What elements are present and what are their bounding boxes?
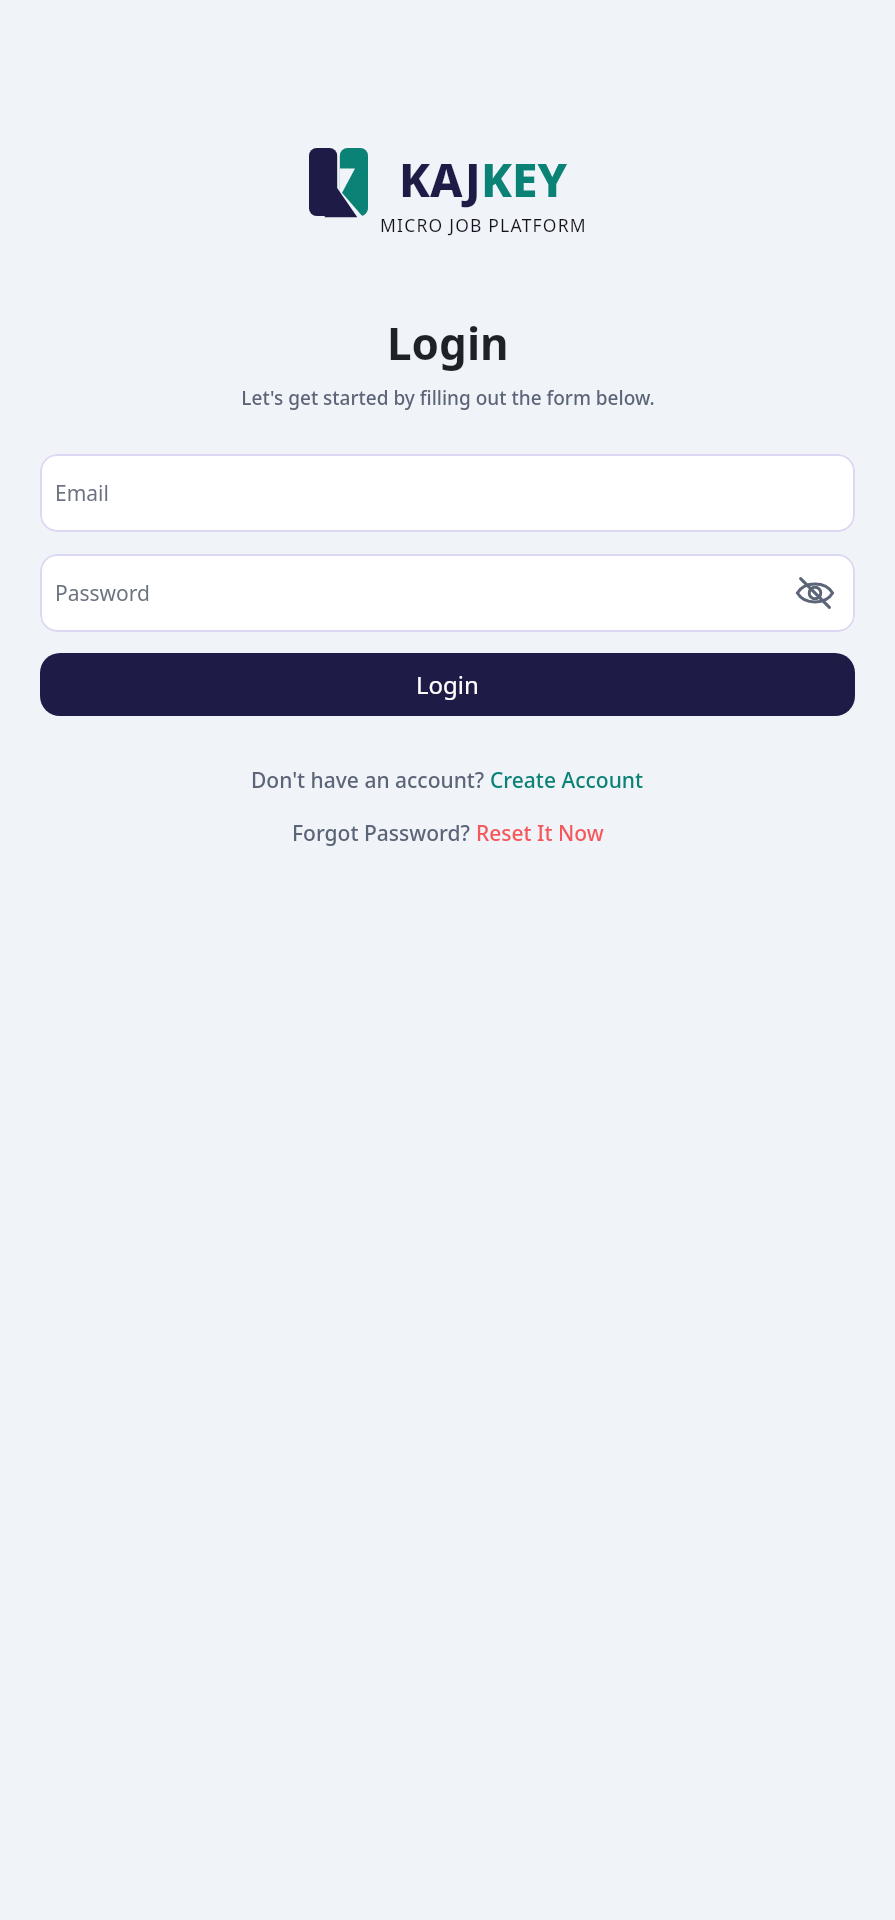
staticText: Forgot Password? <box>292 819 476 848</box>
staticText: Create Account <box>490 766 644 795</box>
staticText: Don't have an account? <box>251 766 490 795</box>
button[interactable]: Email <box>40 454 855 532</box>
staticText: Login <box>416 668 479 701</box>
button[interactable]: Forgot Password? <box>292 819 604 848</box>
staticText: Let's get started by filling out the for… <box>241 385 655 411</box>
staticText: Login <box>387 313 509 373</box>
staticText: Reset It Now <box>476 819 604 848</box>
button[interactable]: Don't have an account? <box>251 766 644 795</box>
button[interactable]: Password <box>40 554 855 632</box>
staticText: KEY <box>481 148 568 211</box>
button[interactable]: Login <box>40 653 855 716</box>
staticText: MICRO JOB PLATFORM <box>380 213 587 237</box>
staticText: KAJ <box>399 148 481 211</box>
button[interactable]: Show password <box>793 571 837 615</box>
staticText: Password <box>55 579 150 608</box>
staticText: Email <box>55 479 109 508</box>
